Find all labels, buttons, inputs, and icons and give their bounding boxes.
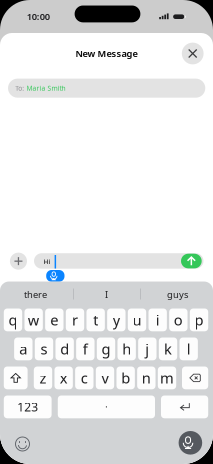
staticText: j [145,339,149,359]
staticText: h [122,339,131,359]
button[interactable]: Close [182,43,204,64]
button[interactable]: i [148,308,167,331]
staticText: o [174,310,183,330]
button[interactable]: Add attachment [10,253,27,270]
staticText: n [142,368,151,388]
staticText: d [60,339,69,359]
staticText: 10:00 [27,10,50,23]
button[interactable]: m [158,366,176,389]
button[interactable]: h [117,337,136,360]
staticText: To: [15,84,24,93]
staticText: a [19,339,27,359]
staticText: e [50,310,58,330]
button[interactable]: c [75,366,93,389]
staticText: z [39,368,46,388]
button[interactable]: e [45,308,63,331]
staticText: r [72,310,78,330]
staticText: 123 [17,399,38,415]
button[interactable]: a [14,337,32,360]
button[interactable]: Delete [182,366,208,389]
button[interactable]: b [116,366,135,389]
button[interactable]: there [0,285,71,303]
staticText: f [83,339,88,359]
button[interactable]: o [169,308,188,331]
staticText: p [194,310,203,330]
staticText: k [164,339,172,359]
button[interactable]: v [96,366,114,389]
staticText: i [156,310,160,330]
button[interactable]: p [190,308,208,331]
button[interactable]: r [66,308,84,331]
button[interactable]: t [86,308,105,331]
button[interactable]: Shift [4,366,28,389]
button[interactable]: s [35,337,53,360]
button[interactable]: Send [181,254,202,268]
staticText: there [24,288,47,301]
staticText: c [81,368,88,388]
staticText: t [93,310,98,330]
staticText: New Message [75,47,137,60]
staticText: y [113,310,120,330]
button[interactable]: g [97,337,115,360]
button[interactable]: w [24,308,43,331]
button[interactable]: k [159,337,177,360]
button[interactable]: Emoji keyboard [11,432,34,455]
staticText: v [101,368,108,388]
button[interactable]: 123 [4,395,52,418]
staticText: l [187,339,191,359]
button[interactable]: Return [161,395,208,418]
staticText: b [121,368,130,388]
staticText: w [28,310,40,330]
staticText: Hi [44,257,51,266]
button[interactable]: y [107,308,125,331]
button[interactable]: q [4,308,22,331]
staticText: s [40,339,47,359]
staticText: u [132,310,141,330]
button[interactable]: I [71,285,142,303]
button[interactable]: u [128,308,146,331]
staticText: I [105,288,108,301]
button[interactable]: z [34,366,52,389]
staticText: g [101,339,110,359]
button[interactable]: d [55,337,74,360]
button[interactable]: Space [58,395,155,418]
button[interactable]: f [76,337,94,360]
staticText: Maria Smith [27,84,66,93]
button[interactable]: x [54,366,73,389]
button[interactable]: guys [142,285,213,303]
staticText: m [160,368,174,388]
staticText: q [8,310,17,330]
staticText: guys [167,288,188,301]
button[interactable]: l [179,337,198,360]
button[interactable]: j [138,337,157,360]
button[interactable]: Dictate [179,431,202,455]
button[interactable]: n [137,366,156,389]
staticText: x [60,368,68,388]
